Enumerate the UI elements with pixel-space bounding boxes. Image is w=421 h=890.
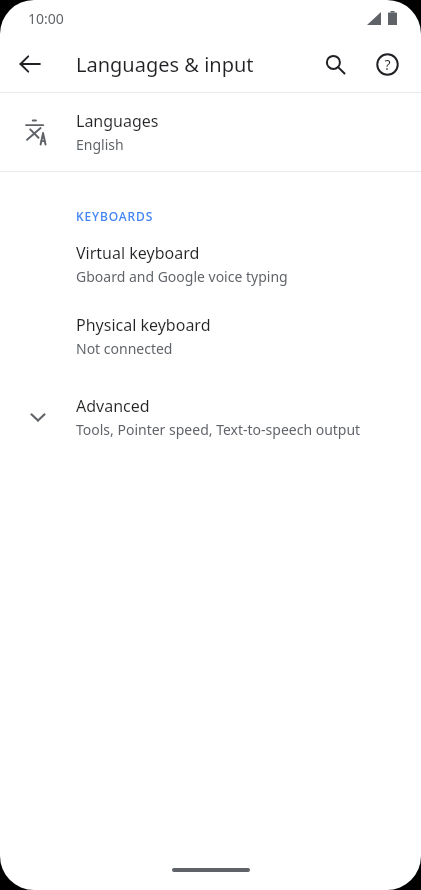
staticText: Languages & input: [76, 51, 254, 78]
staticText: English: [76, 135, 124, 154]
button[interactable]: Search: [313, 42, 357, 86]
staticText: 10:00: [28, 9, 64, 28]
staticText: Not connected: [76, 339, 173, 358]
button[interactable]: Back: [8, 42, 52, 86]
button[interactable]: Advanced: [0, 388, 421, 446]
staticText: Gboard and Google voice typing: [76, 267, 288, 286]
staticText: ?: [384, 55, 391, 74]
staticText: Physical keyboard: [76, 314, 211, 336]
staticText: Languages: [76, 110, 159, 132]
staticText: Tools, Pointer speed, Text-to-speech out…: [76, 420, 361, 439]
button[interactable]: Help: [365, 42, 409, 86]
staticText: Advanced: [76, 395, 150, 417]
button[interactable]: Virtual keyboard: [0, 234, 421, 294]
staticText: Virtual keyboard: [76, 242, 200, 264]
staticText: KEYBOARDS: [76, 208, 154, 224]
button[interactable]: Languages: [0, 93, 421, 171]
button[interactable]: Physical keyboard: [0, 306, 421, 366]
